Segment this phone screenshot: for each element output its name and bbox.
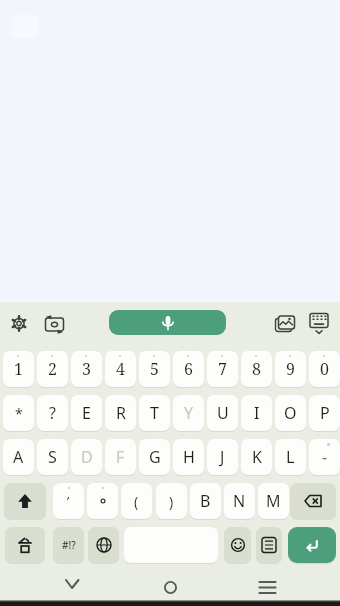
button[interactable]: 1 (3, 351, 34, 387)
button[interactable] (40, 310, 69, 338)
button[interactable]: ( (121, 483, 152, 519)
button[interactable]: * (3, 395, 34, 431)
staticText: Y (184, 402, 194, 424)
button[interactable] (271, 309, 299, 337)
staticText: O (284, 402, 297, 424)
staticText: ( (134, 492, 139, 511)
button[interactable]: Y (173, 395, 204, 431)
button[interactable] (5, 309, 33, 337)
button[interactable]: H (173, 439, 204, 475)
button[interactable] (5, 527, 45, 563)
button[interactable] (4, 483, 46, 519)
staticText: D (81, 446, 93, 468)
button[interactable]: 5 (139, 351, 170, 387)
staticText: ’ (67, 492, 70, 510)
staticText: P (320, 402, 330, 424)
staticText: G (149, 446, 161, 468)
staticText: M (266, 490, 281, 512)
staticText: 3 (82, 358, 91, 380)
staticText: R (116, 402, 126, 424)
button[interactable] (256, 527, 282, 563)
button[interactable]: 8 (241, 351, 272, 387)
button[interactable]: J (207, 439, 238, 475)
button[interactable]: - (309, 439, 340, 475)
button[interactable]: E (71, 395, 102, 431)
staticText: 4 (116, 358, 125, 380)
staticText: T (150, 402, 159, 424)
button[interactable]: O (275, 395, 306, 431)
staticText: 8 (252, 358, 261, 380)
staticText: 9 (286, 358, 295, 380)
staticText: L (286, 446, 295, 468)
staticText: I (254, 402, 260, 424)
staticText: B (200, 490, 211, 512)
staticText: K (252, 446, 262, 468)
button[interactable] (88, 527, 119, 563)
button[interactable]: ) (156, 483, 187, 519)
staticText: 0 (320, 358, 329, 380)
button[interactable]: 0 (309, 351, 340, 387)
button[interactable]: ? (37, 395, 68, 431)
staticText: #!? (62, 538, 76, 552)
staticText: 2 (48, 358, 57, 380)
staticText: * (15, 404, 23, 423)
staticText: ) (169, 492, 174, 511)
button[interactable] (290, 483, 336, 519)
staticText: 5 (150, 358, 159, 380)
button[interactable]: A (3, 439, 34, 475)
staticText: F (116, 446, 125, 468)
button[interactable]: 4 (105, 351, 136, 387)
button[interactable]: I (241, 395, 272, 431)
button[interactable]: 7 (207, 351, 238, 387)
button[interactable] (224, 527, 251, 563)
button[interactable]: D (71, 439, 102, 475)
staticText: ? (49, 402, 56, 424)
button[interactable]: 9 (275, 351, 306, 387)
staticText: N (233, 490, 246, 512)
button[interactable] (109, 310, 226, 335)
button[interactable]: 3 (71, 351, 102, 387)
button[interactable]: U (207, 395, 238, 431)
staticText: U (217, 402, 229, 424)
staticText: 7 (218, 358, 227, 380)
button[interactable]: R (105, 395, 136, 431)
staticText: E (82, 402, 91, 424)
staticText: A (13, 446, 24, 468)
button[interactable]: F (105, 439, 136, 475)
button[interactable]: T (139, 395, 170, 431)
staticText: J (220, 446, 225, 468)
button[interactable]: B (190, 483, 221, 519)
button[interactable]: 6 (173, 351, 204, 387)
button[interactable]: N (224, 483, 255, 519)
staticText: S (48, 446, 57, 468)
button[interactable]: L (275, 439, 306, 475)
button[interactable]: #!? (53, 527, 84, 563)
staticText: 1 (14, 358, 23, 380)
button[interactable]: P (309, 395, 340, 431)
staticText: 6 (184, 358, 193, 380)
button[interactable]: M (258, 483, 289, 519)
button[interactable] (305, 308, 333, 336)
button[interactable]: 2 (37, 351, 68, 387)
button[interactable] (87, 483, 118, 519)
button[interactable]: G (139, 439, 170, 475)
button[interactable]: S (37, 439, 68, 475)
button[interactable]: K (241, 439, 272, 475)
button[interactable]: ’ (53, 483, 84, 519)
button[interactable] (288, 527, 336, 563)
staticText: - (322, 446, 328, 468)
staticText: H (183, 446, 195, 468)
